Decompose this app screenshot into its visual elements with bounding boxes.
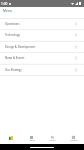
staticText: Design & Development [5, 45, 36, 49]
staticText: Search [49, 139, 56, 142]
button[interactable]: Search [42, 130, 63, 144]
staticText: Technology [5, 33, 20, 37]
staticText: 1:00 [1, 2, 8, 6]
staticText: Menu [29, 139, 35, 142]
button[interactable]: Our Strategy [0, 64, 84, 75]
button[interactable]: Menu [0, 7, 84, 18]
button[interactable]: Menu [21, 130, 42, 144]
button[interactable]: Technology [0, 29, 84, 40]
button[interactable]: News & Events [0, 52, 84, 63]
button[interactable]: Settings [63, 130, 84, 144]
staticText: Operations [5, 22, 20, 26]
button[interactable]: Design & Development [0, 41, 84, 52]
staticText: Settings [70, 139, 78, 142]
staticText: News & Events [5, 56, 25, 60]
button[interactable]: Operations [0, 18, 84, 29]
staticText: Our Strategy [5, 68, 22, 72]
staticText: Menu [3, 8, 13, 12]
button[interactable]: Home [0, 130, 21, 144]
